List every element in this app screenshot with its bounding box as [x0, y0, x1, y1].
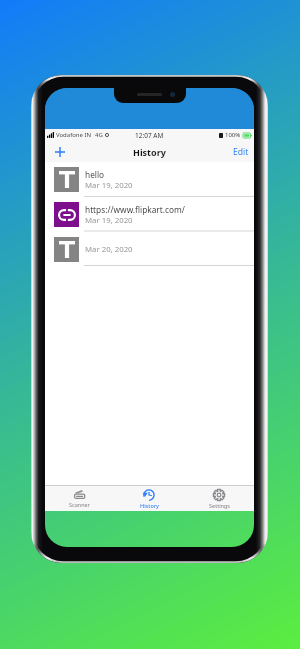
- staticText: Scanner: [69, 501, 90, 508]
- button[interactable]: Edit: [228, 143, 254, 161]
- button[interactable]: Add: [50, 142, 69, 161]
- staticText: Vodafone IN: [56, 131, 92, 139]
- button[interactable]: Mar 20, 2020: [45, 232, 254, 267]
- staticText: 12:07 AM: [135, 131, 164, 140]
- staticText: hello: [85, 169, 105, 180]
- staticText: 100%: [225, 131, 241, 139]
- button[interactable]: Scanner: [45, 486, 114, 511]
- button[interactable]: Settings: [184, 486, 254, 511]
- staticText: Mar 19, 2020: [85, 180, 133, 191]
- staticText: Mar 20, 2020: [85, 244, 133, 255]
- button[interactable]: History: [114, 486, 184, 511]
- button[interactable]: hello: [45, 162, 254, 197]
- button[interactable]: https://www.flipkart.com/: [45, 197, 254, 232]
- staticText: https://www.flipkart.com/: [85, 204, 185, 215]
- staticText: History: [140, 502, 159, 509]
- staticText: Edit: [233, 146, 249, 158]
- staticText: 4G: [95, 131, 103, 139]
- staticText: History: [133, 146, 166, 158]
- staticText: Settings: [209, 502, 230, 509]
- staticText: Mar 19, 2020: [85, 215, 133, 226]
